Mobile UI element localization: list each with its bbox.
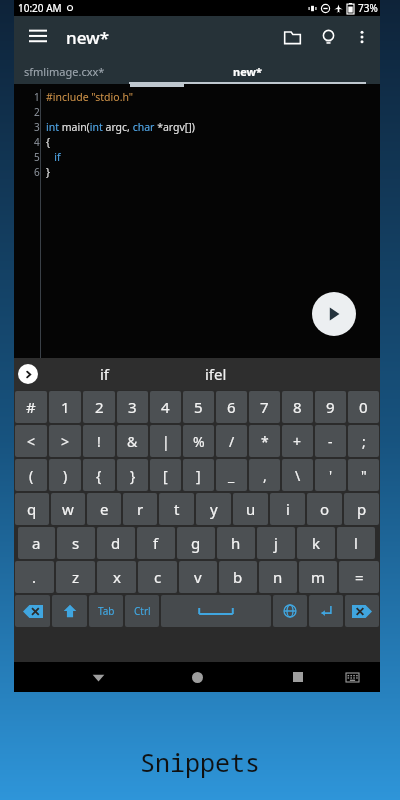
button[interactable]: +: [282, 425, 313, 457]
staticText: 5: [34, 150, 40, 164]
button[interactable]: /: [216, 425, 247, 457]
button[interactable]: &: [117, 425, 148, 457]
button[interactable]: 7: [249, 391, 280, 423]
button[interactable]: 4: [150, 391, 181, 423]
staticText: ifel: [205, 364, 227, 384]
button[interactable]: Shift: [52, 595, 87, 627]
button[interactable]: 3: [117, 391, 148, 423]
staticText: {: [96, 466, 102, 485]
button[interactable]: 6: [216, 391, 247, 423]
button[interactable]: *: [249, 425, 280, 457]
button[interactable]: |: [150, 425, 181, 457]
button[interactable]: 5: [183, 391, 214, 423]
button[interactable]: h: [217, 527, 255, 559]
button[interactable]: s: [57, 527, 95, 559]
button[interactable]: !: [83, 425, 115, 457]
button[interactable]: sfmlimage.cxx*: [14, 58, 115, 84]
staticText: if: [100, 364, 110, 384]
staticText: j: [274, 533, 278, 553]
button[interactable]: o: [307, 493, 342, 525]
button[interactable]: -: [315, 425, 346, 457]
button[interactable]: Switch keyboard: [338, 663, 366, 691]
staticText: 0: [359, 397, 368, 417]
button[interactable]: k: [297, 527, 335, 559]
button[interactable]: 9: [315, 391, 346, 423]
button[interactable]: 8: [282, 391, 313, 423]
button[interactable]: w: [51, 493, 85, 525]
button[interactable]: t: [159, 493, 194, 525]
button[interactable]: y: [196, 493, 231, 525]
button[interactable]: i: [270, 493, 305, 525]
button[interactable]: Recents: [284, 663, 312, 691]
button[interactable]: Tab: [89, 595, 123, 627]
button[interactable]: q: [15, 493, 49, 525]
button[interactable]: Menu: [22, 21, 54, 53]
button[interactable]: u: [233, 493, 268, 525]
button[interactable]: ": [348, 459, 379, 491]
staticText: }: [130, 466, 136, 485]
button[interactable]: >: [49, 425, 81, 457]
button[interactable]: (: [15, 459, 47, 491]
button[interactable]: z: [56, 561, 95, 593]
button[interactable]: x: [97, 561, 136, 593]
button[interactable]: 2: [83, 391, 115, 423]
button[interactable]: new*: [115, 58, 380, 84]
button[interactable]: ]: [183, 459, 214, 491]
staticText: 3: [128, 397, 137, 417]
button[interactable]: Hints: [310, 19, 346, 55]
button[interactable]: v: [179, 561, 217, 593]
staticText: z: [72, 567, 80, 587]
button[interactable]: Open folder: [274, 19, 310, 55]
button[interactable]: #: [15, 391, 47, 423]
button[interactable]: g: [177, 527, 215, 559]
button[interactable]: b: [219, 561, 257, 593]
staticText: 6: [227, 397, 236, 417]
button[interactable]: [: [150, 459, 181, 491]
button[interactable]: More options: [346, 21, 378, 53]
button[interactable]: .: [15, 561, 54, 593]
button[interactable]: Ctrl: [125, 595, 159, 627]
staticText: \: [295, 466, 301, 485]
staticText: r: [137, 499, 144, 519]
button[interactable]: =: [339, 561, 379, 593]
button[interactable]: l: [337, 527, 375, 559]
button[interactable]: a: [18, 527, 55, 559]
button[interactable]: <: [15, 425, 47, 457]
button[interactable]: m: [299, 561, 337, 593]
staticText: l: [354, 533, 358, 553]
button[interactable]: ': [315, 459, 346, 491]
button[interactable]: {: [83, 459, 115, 491]
button[interactable]: \: [282, 459, 313, 491]
button[interactable]: Delete: [345, 595, 379, 627]
button[interactable]: Home: [183, 663, 211, 691]
staticText: *: [261, 432, 269, 451]
button[interactable]: ): [49, 459, 81, 491]
button[interactable]: Enter: [309, 595, 343, 627]
button[interactable]: Back: [84, 663, 112, 691]
button[interactable]: p: [344, 493, 379, 525]
button[interactable]: %: [183, 425, 214, 457]
button[interactable]: j: [257, 527, 295, 559]
button[interactable]: e: [87, 493, 121, 525]
button[interactable]: if: [84, 360, 126, 388]
button[interactable]: Run: [312, 292, 356, 336]
button[interactable]: n: [259, 561, 297, 593]
button[interactable]: r: [123, 493, 157, 525]
button[interactable]: _: [216, 459, 247, 491]
staticText: b: [233, 567, 243, 587]
staticText: v: [194, 567, 202, 587]
button[interactable]: ;: [348, 425, 379, 457]
button[interactable]: 0: [348, 391, 379, 423]
button[interactable]: ifel: [189, 360, 243, 388]
button[interactable]: More suggestions: [18, 364, 38, 384]
button[interactable]: f: [137, 527, 175, 559]
button[interactable]: Backspace: [15, 595, 50, 627]
button[interactable]: Language: [273, 595, 307, 627]
button[interactable]: d: [97, 527, 135, 559]
button[interactable]: ,: [249, 459, 280, 491]
button[interactable]: 1: [49, 391, 81, 423]
staticText: =: [355, 567, 364, 587]
button[interactable]: Space: [161, 595, 271, 627]
button[interactable]: }: [117, 459, 148, 491]
button[interactable]: c: [138, 561, 177, 593]
